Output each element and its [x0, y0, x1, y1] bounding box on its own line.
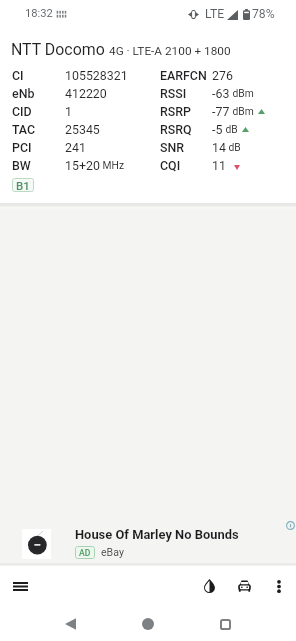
staticText: MHz: [100, 159, 124, 171]
staticText: 25345: [65, 122, 100, 137]
button[interactable]: House Of Marley No Bounds: [0, 516, 296, 566]
staticText: 18:32: [25, 7, 53, 20]
staticText: 412220: [65, 86, 107, 101]
staticText: TAC: [12, 122, 36, 137]
staticText: -77: [212, 104, 230, 119]
staticText: PCI: [12, 140, 32, 155]
staticText: 11: [212, 158, 226, 173]
staticText: 4G · LTE-A 2100 + 1800: [109, 44, 231, 58]
staticText: AD: [79, 548, 91, 558]
staticText: LTE: [205, 7, 225, 21]
staticText: CID: [12, 104, 32, 119]
staticText: eBay: [101, 546, 124, 558]
button[interactable]: Recent apps: [211, 610, 239, 638]
staticText: 241: [65, 140, 86, 155]
button[interactable]: Ad information: [284, 519, 296, 531]
button[interactable]: More options: [265, 572, 293, 600]
staticText: RSRP: [160, 104, 191, 119]
staticText: eNb: [12, 86, 35, 101]
staticText: BW: [12, 158, 31, 173]
staticText: dBm: [230, 105, 254, 117]
button[interactable]: Driving mode: [230, 572, 258, 600]
button[interactable]: B1: [12, 178, 34, 192]
staticText: -5: [212, 122, 223, 137]
staticText: 14: [212, 140, 226, 155]
staticText: B1: [16, 179, 30, 192]
staticText: EARFCN: [160, 68, 207, 83]
staticText: 1: [65, 104, 72, 119]
staticText: 15+20: [65, 158, 100, 173]
staticText: CI: [12, 68, 24, 83]
staticText: SNR: [160, 140, 185, 155]
button[interactable]: Navigation menu: [6, 572, 34, 600]
button[interactable]: Home: [134, 610, 162, 638]
button[interactable]: Toggle theme: [195, 572, 223, 600]
staticText: -63: [212, 86, 230, 101]
button[interactable]: Back: [56, 610, 84, 638]
staticText: NTT Docomo: [11, 40, 105, 59]
staticText: 276: [212, 68, 233, 83]
staticText: CQI: [160, 158, 181, 173]
staticText: House Of Marley No Bounds: [75, 527, 239, 542]
staticText: RSSI: [160, 86, 187, 101]
staticText: RSRQ: [160, 122, 192, 137]
staticText: dB: [226, 141, 241, 153]
staticText: 78%: [252, 7, 275, 21]
staticText: dBm: [230, 87, 254, 99]
staticText: 105528321: [65, 68, 128, 83]
staticText: dB: [223, 123, 238, 135]
